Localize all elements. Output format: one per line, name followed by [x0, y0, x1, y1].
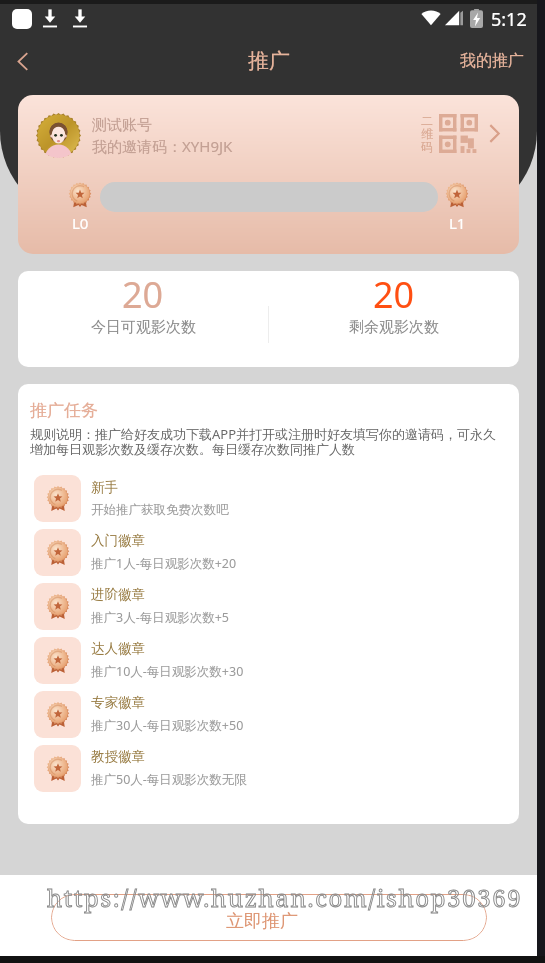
staticText: 进阶徽章	[91, 586, 145, 603]
staticText: 20	[373, 271, 415, 319]
staticText: 达人徽章	[91, 640, 145, 657]
staticText: 今日可观影次数	[91, 318, 196, 337]
staticText: https://www.huzhan.com/ishop30369	[47, 881, 523, 914]
staticText: 推广3人-每日观影次数+5	[91, 609, 229, 626]
button[interactable]: 进阶徽章	[30, 579, 507, 633]
button[interactable]: Back	[0, 38, 46, 84]
staticText: 推广	[248, 48, 290, 74]
staticText: L0	[72, 213, 89, 233]
staticText: 规则说明：推广给好友成功下载APP并打开或注册时好友填写你的邀请码，可永久增加每…	[30, 425, 505, 458]
staticText: 推广任务	[30, 400, 98, 421]
staticText: 教授徽章	[91, 748, 145, 765]
staticText: 我的邀请码：XYH9JK	[92, 136, 233, 156]
button[interactable]: 测试账号	[18, 95, 519, 171]
staticText: 入门徽章	[91, 532, 145, 549]
button[interactable]: 新手	[30, 471, 507, 525]
button[interactable]: 达人徽章	[30, 633, 507, 687]
button[interactable]: 立即推广	[51, 894, 487, 941]
staticText: 立即推广	[226, 910, 298, 933]
staticText: 开始推广获取免费次数吧	[91, 502, 229, 518]
staticText: 我的推广	[460, 51, 524, 71]
staticText: 推广1人-每日观影次数+20	[91, 555, 237, 572]
staticText: 推广30人-每日观影次数+50	[91, 717, 244, 734]
staticText: 二 维 码	[421, 113, 433, 154]
staticText: 推广10人-每日观影次数+30	[91, 663, 244, 680]
staticText: 20	[122, 271, 164, 319]
button[interactable]: 入门徽章	[30, 525, 507, 579]
button[interactable]: 20	[18, 271, 268, 367]
staticText: 测试账号	[92, 116, 152, 135]
staticText: 专家徽章	[91, 694, 145, 711]
staticText: 剩余观影次数	[349, 318, 439, 337]
button[interactable]: 教授徽章	[30, 741, 507, 795]
button[interactable]: 我的推广	[447, 38, 537, 84]
staticText: 5:12	[491, 7, 527, 32]
staticText: L1	[449, 213, 466, 233]
staticText: 推广50人-每日观影次数无限	[91, 771, 247, 788]
button[interactable]: 20	[269, 271, 519, 367]
staticText: 新手	[91, 479, 118, 496]
button[interactable]: 专家徽章	[30, 687, 507, 741]
